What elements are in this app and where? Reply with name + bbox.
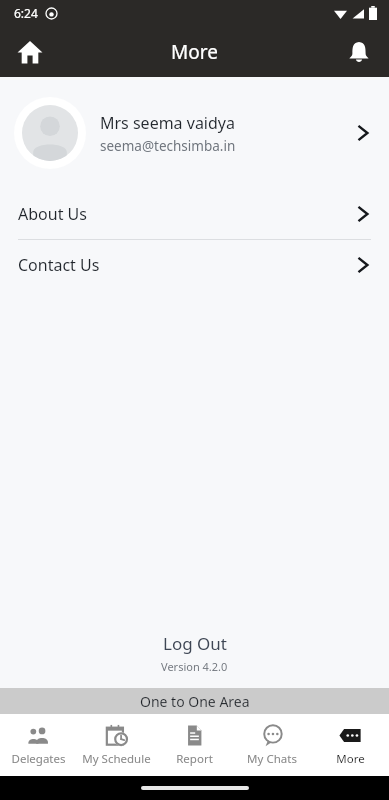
button[interactable]: One to One Area bbox=[0, 688, 389, 714]
button[interactable]: Contact Us bbox=[0, 240, 389, 290]
staticText: 6:24 bbox=[14, 5, 38, 21]
staticText: One to One Area bbox=[140, 692, 250, 711]
button[interactable]: More bbox=[311, 718, 389, 773]
button[interactable]: Report bbox=[155, 718, 233, 773]
staticText: Contact Us bbox=[18, 254, 353, 276]
button[interactable]: My Chats bbox=[233, 718, 311, 773]
staticText: Mrs seema vaidya bbox=[100, 112, 235, 134]
button[interactable]: About Us bbox=[0, 189, 389, 239]
staticText: Version 4.2.0 bbox=[161, 659, 228, 674]
staticText: More bbox=[336, 751, 365, 767]
staticText: Log Out bbox=[163, 632, 227, 655]
button[interactable]: Log Out bbox=[143, 630, 247, 657]
button[interactable]: Delegates bbox=[0, 718, 77, 773]
staticText: My Schedule bbox=[82, 751, 151, 767]
staticText: Delegates bbox=[11, 751, 66, 767]
button[interactable]: My Schedule bbox=[77, 718, 155, 773]
button[interactable]: Notifications bbox=[337, 30, 381, 74]
button[interactable]: Home bbox=[8, 30, 52, 74]
staticText: About Us bbox=[18, 203, 353, 225]
staticText: seema@techsimba.in bbox=[100, 137, 236, 155]
staticText: Report bbox=[176, 751, 213, 767]
staticText: My Chats bbox=[247, 751, 297, 767]
button[interactable]: Mrs seema vaidya bbox=[0, 77, 389, 189]
staticText: More bbox=[171, 39, 218, 65]
